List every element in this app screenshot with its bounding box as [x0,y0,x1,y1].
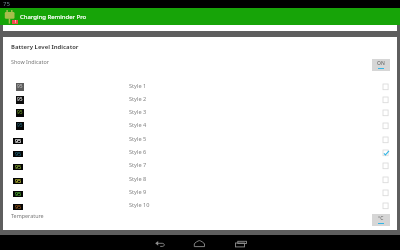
button[interactable]: 95 [3,94,397,107]
staticText: ON [377,60,385,67]
staticText: 95 [17,122,23,129]
other: App logo [0,8,20,25]
staticText: 95 [15,150,22,156]
staticText: °C [378,215,384,222]
staticText: Style 9 [129,188,147,196]
staticText: 75 [3,0,10,8]
staticText: Style 5 [129,135,147,143]
staticText: 95 [17,96,23,103]
button[interactable]: Home [193,237,207,249]
staticText: 95 [17,83,23,90]
button[interactable]: Select style [383,150,390,157]
staticText: Style 1 [129,82,147,90]
staticText: Style 10 [129,201,150,209]
button[interactable]: 95 [3,200,397,213]
button[interactable]: Select style [383,97,390,104]
staticText: Style 8 [129,175,147,183]
button[interactable]: Recent apps [234,237,248,249]
button[interactable]: 95 [3,134,397,147]
button[interactable]: App logo [0,8,400,25]
staticText: 95 [15,203,22,209]
button[interactable]: Select style [383,123,390,130]
button[interactable]: 95 [3,147,397,160]
staticText: 95 [15,163,22,169]
button[interactable]: Select style [383,190,390,197]
staticText: Style 7 [129,161,147,169]
staticText: 95 [15,137,22,143]
button[interactable]: 95 [3,187,397,200]
button[interactable]: 95 [3,107,397,120]
staticText: Show Indicator [11,58,49,65]
staticText: Style 3 [129,108,147,116]
button[interactable]: 95 [3,160,397,173]
button[interactable]: Select style [383,203,390,210]
button[interactable]: Back [153,237,167,249]
staticText: Charging Reminder Pro [20,13,87,21]
button[interactable]: Select style [383,163,390,170]
button[interactable]: 95 [3,174,397,187]
button[interactable]: 95 [3,81,397,94]
staticText: Style 4 [129,121,147,129]
staticText: Style 2 [129,95,147,103]
staticText: Temperature [11,212,44,219]
staticText: Style 6 [129,148,147,156]
staticText: 95 [15,177,22,183]
staticText: ! [15,19,16,23]
button[interactable]: Select style [383,84,390,91]
button[interactable]: Select style [383,137,390,144]
button[interactable]: Select style [383,177,390,184]
staticText: 95 [15,190,22,196]
button[interactable]: °C [372,214,390,226]
button[interactable]: Select style [383,110,390,117]
button[interactable]: 95 [3,120,397,133]
button[interactable]: ON [372,59,390,71]
staticText: 95 [17,109,23,116]
staticText: Battery Level Indicator [11,43,79,51]
